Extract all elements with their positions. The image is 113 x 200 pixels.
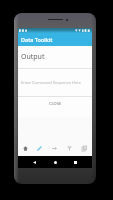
button[interactable]: Send	[47, 143, 62, 154]
button[interactable]: CLOSE	[18, 97, 92, 117]
button[interactable]: Home	[51, 158, 60, 167]
button[interactable]: Back	[30, 158, 39, 167]
staticText: Output	[21, 52, 45, 62]
staticText: Data Toolkit	[21, 36, 53, 43]
button[interactable]: Edit	[32, 143, 47, 154]
button[interactable]: Home	[18, 143, 32, 154]
button[interactable]: Copy	[77, 143, 92, 154]
button[interactable]: Data Toolkit	[18, 33, 92, 46]
staticText: Enter Command Sequence Here	[21, 80, 82, 85]
button[interactable]: Filter	[62, 143, 77, 154]
button[interactable]: Recents	[71, 158, 80, 167]
staticText: CLOSE	[49, 101, 62, 106]
